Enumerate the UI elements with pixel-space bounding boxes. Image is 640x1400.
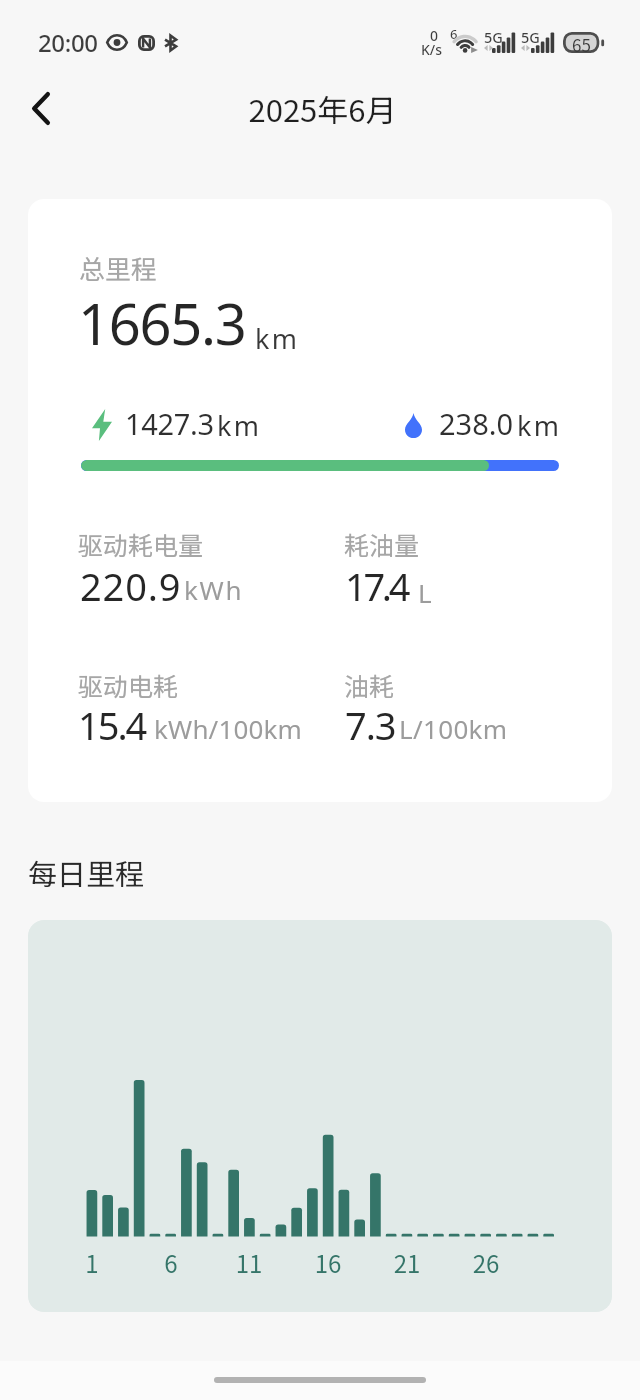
staticText: 每日里程 (28, 851, 145, 893)
staticText: 7.3 (345, 699, 396, 751)
staticText: 20:00 (38, 26, 98, 59)
staticText: 0 (430, 26, 439, 45)
staticText: 驱动耗电量 (78, 526, 204, 562)
staticText: 65 (572, 32, 591, 57)
staticText: 耗油量 (344, 526, 420, 562)
staticText: 1 (72, 1245, 112, 1280)
staticText: km (517, 407, 562, 444)
staticText: kWh (184, 572, 244, 607)
staticText: km (255, 320, 300, 357)
staticText: L (418, 575, 432, 610)
staticText: 油耗 (344, 667, 395, 703)
staticText: 6 (450, 25, 458, 43)
staticText: 5G (521, 27, 540, 47)
staticText: kWh/100km (154, 711, 303, 746)
staticText: 17.4 (345, 560, 408, 612)
staticText: 总里程 (79, 249, 158, 287)
staticText: km (217, 407, 262, 444)
staticText: 15.4 (78, 699, 146, 751)
staticText: 1665.3 (78, 285, 246, 361)
staticText: 5G (484, 27, 503, 47)
staticText: 26 (466, 1245, 506, 1280)
staticText: 16 (308, 1245, 348, 1280)
staticText: K/s (421, 40, 443, 59)
staticText: 6 (151, 1245, 191, 1280)
staticText: 1427.3 (125, 404, 214, 443)
staticText: 2025年6月 (248, 86, 397, 131)
staticText: 238.0 (439, 404, 514, 443)
button[interactable]: Back (13, 80, 69, 136)
staticText: 21 (387, 1245, 427, 1280)
staticText: 220.9 (80, 560, 182, 612)
staticText: 驱动电耗 (78, 667, 179, 703)
staticText: L/100km (399, 711, 508, 746)
staticText: 11 (229, 1245, 269, 1280)
